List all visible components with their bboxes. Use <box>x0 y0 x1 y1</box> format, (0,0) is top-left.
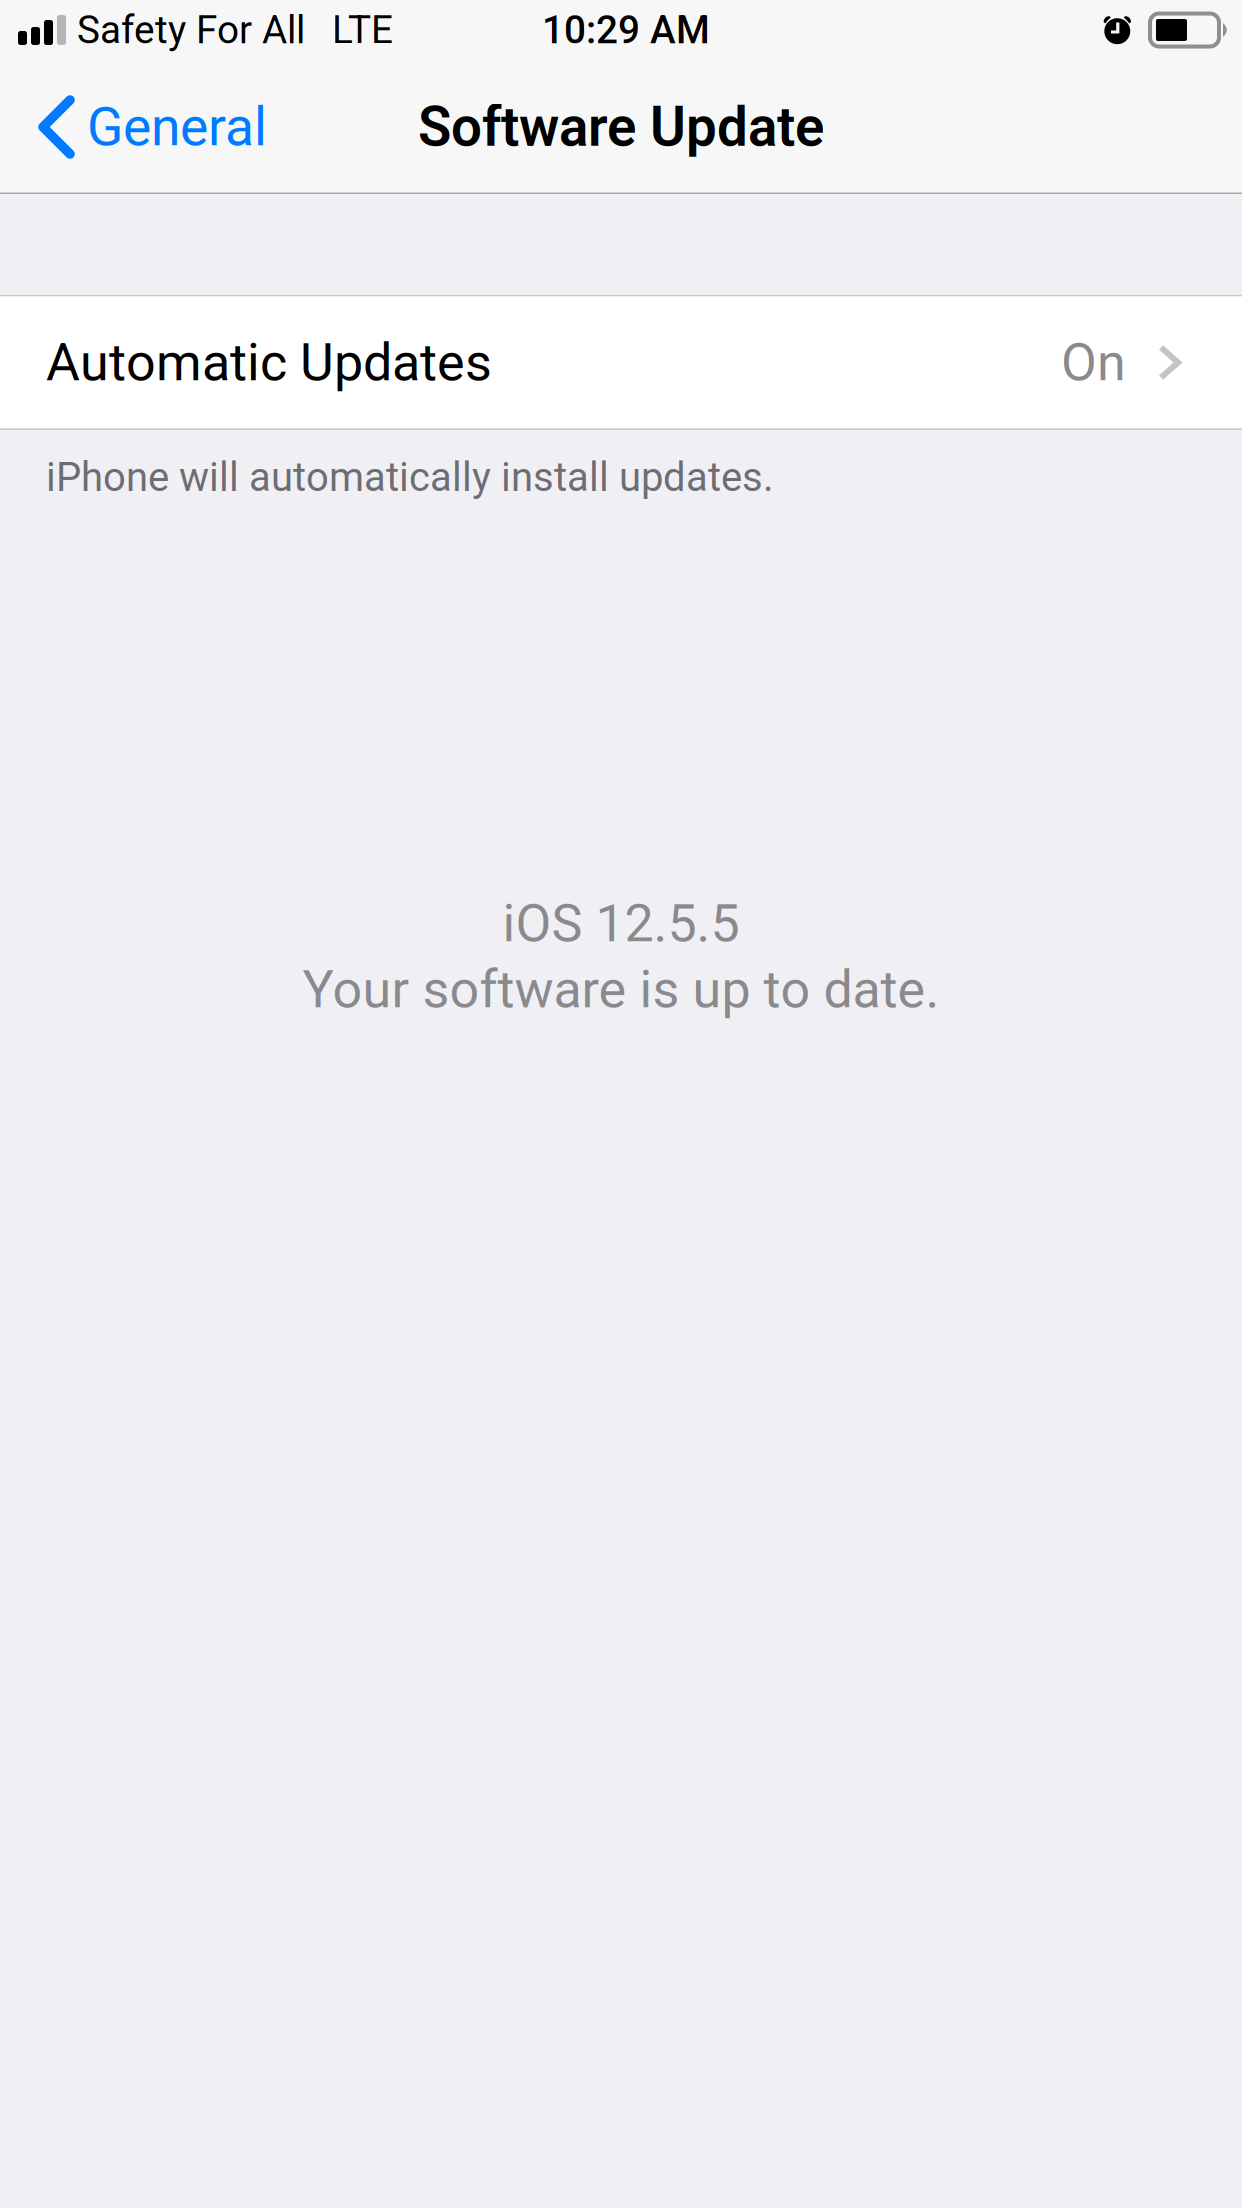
button[interactable]: General <box>0 61 287 193</box>
staticText: LTE <box>332 7 393 53</box>
staticText: Your software is up to date. <box>302 959 939 1020</box>
staticText: iOS 12.5.5 <box>502 893 739 954</box>
staticText: Safety For All <box>77 7 305 53</box>
staticText: General <box>87 96 267 158</box>
staticText: Automatic Updates <box>46 332 492 393</box>
button[interactable]: Automatic Updates <box>0 296 1242 428</box>
staticText: 10:29 AM <box>542 7 710 53</box>
staticText: On <box>1061 332 1126 393</box>
staticText: Software Update <box>418 95 824 159</box>
staticText: iPhone will automatically install update… <box>46 454 774 501</box>
